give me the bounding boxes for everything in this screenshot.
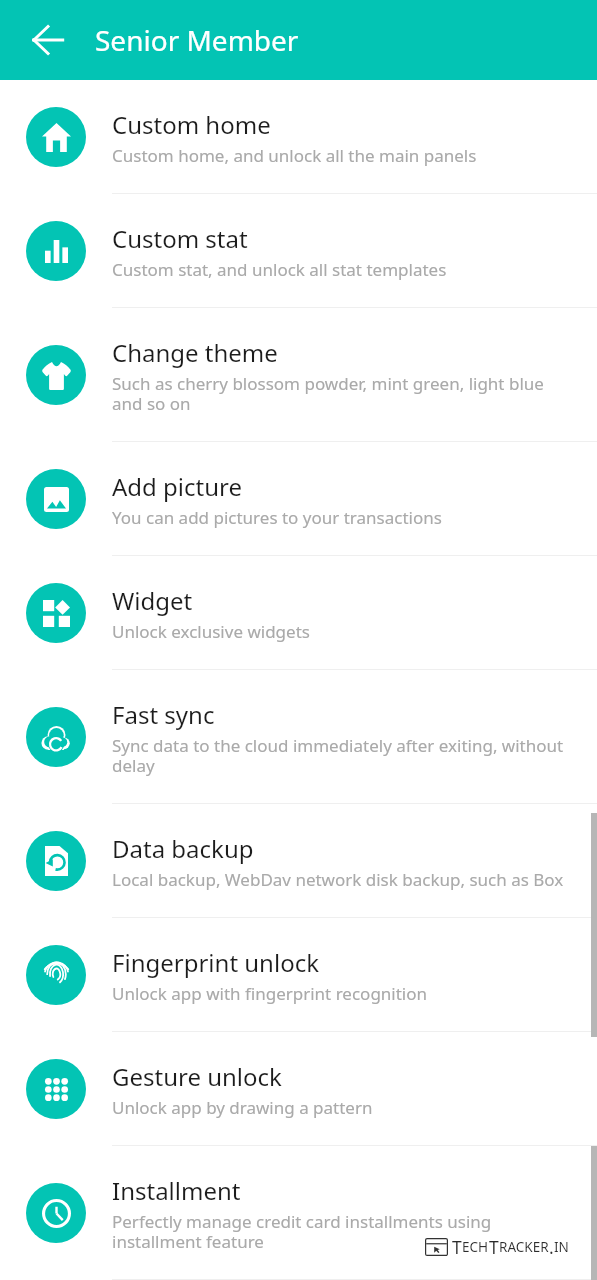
staticText: Custom stat <box>112 222 248 255</box>
staticText: Add picture <box>112 470 243 503</box>
staticText: T <box>489 1235 499 1259</box>
staticText: Data backup <box>112 832 254 865</box>
staticText: Fingerprint unlock <box>112 946 319 979</box>
staticText: Senior Member <box>95 21 299 59</box>
button[interactable]: Fingerprint unlock <box>0 918 597 1032</box>
staticText: Fast sync <box>112 698 215 731</box>
button[interactable]: Installment <box>0 1146 597 1280</box>
staticText: Unlock app with fingerprint recognition <box>112 982 428 1005</box>
button[interactable]: Gesture unlock <box>0 1032 597 1146</box>
staticText: . <box>549 1235 554 1259</box>
button[interactable]: Custom stat <box>0 194 597 308</box>
button[interactable]: Custom home <box>0 80 597 194</box>
staticText: Such as cherry blossom powder, mint gree… <box>112 372 573 415</box>
staticText: Gesture unlock <box>112 1060 282 1093</box>
staticText: Unlock app by drawing a pattern <box>112 1096 373 1119</box>
button[interactable]: Change theme <box>0 308 597 442</box>
button[interactable]: Widget <box>0 556 597 670</box>
staticText: Change theme <box>112 336 278 369</box>
staticText: You can add pictures to your transaction… <box>112 506 442 529</box>
button[interactable]: Add picture <box>0 442 597 556</box>
staticText: IN <box>554 1238 569 1256</box>
staticText: T <box>452 1235 462 1259</box>
staticText: Custom stat, and unlock all stat templat… <box>112 258 447 281</box>
button[interactable]: Back <box>24 16 72 64</box>
staticText: Custom home <box>112 108 271 141</box>
staticText: Local backup, WebDav network disk backup… <box>112 868 564 891</box>
button[interactable]: Fast sync <box>0 670 597 804</box>
staticText: Installment <box>112 1174 241 1207</box>
staticText: Widget <box>112 584 193 617</box>
staticText: Perfectly manage credit card installment… <box>112 1210 573 1253</box>
button[interactable]: Data backup <box>0 804 597 918</box>
staticText: Sync data to the cloud immediately after… <box>112 734 573 777</box>
staticText: ECH <box>462 1238 489 1256</box>
staticText: Unlock exclusive widgets <box>112 620 310 643</box>
staticText: Custom home, and unlock all the main pan… <box>112 144 477 167</box>
staticText: RACKER <box>499 1238 549 1256</box>
